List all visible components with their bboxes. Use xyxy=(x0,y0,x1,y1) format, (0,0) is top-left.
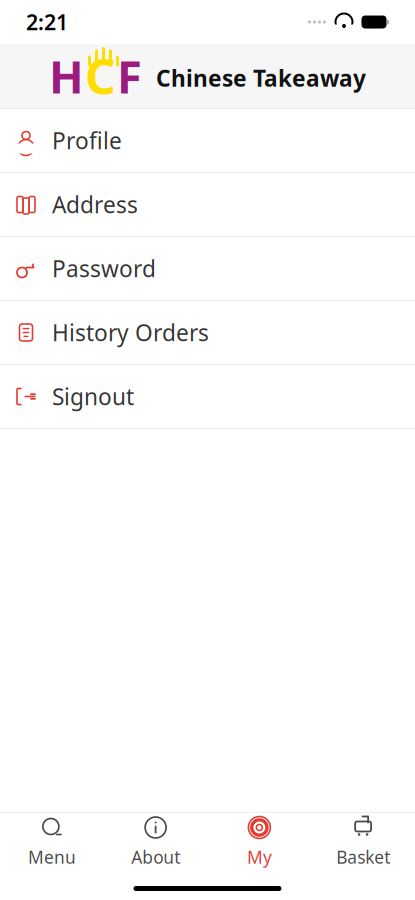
staticText: Password xyxy=(52,253,156,283)
staticText: C xyxy=(85,44,116,108)
staticText: Basket xyxy=(336,845,390,868)
button[interactable]: Signout xyxy=(0,365,415,429)
button[interactable]: Basket xyxy=(311,805,415,876)
button[interactable]: Password xyxy=(0,237,415,301)
button[interactable]: History Orders xyxy=(0,301,415,365)
button[interactable]: About xyxy=(104,805,208,876)
staticText: F xyxy=(117,46,142,106)
staticText: H xyxy=(49,46,84,106)
button[interactable]: Profile xyxy=(0,109,415,173)
staticText: Menu xyxy=(28,845,76,868)
staticText: Profile xyxy=(52,125,122,155)
staticText: History Orders xyxy=(52,317,209,347)
staticText: About xyxy=(131,845,180,868)
staticText: 2:21 xyxy=(26,8,68,36)
button[interactable]: My xyxy=(207,805,311,876)
staticText: My xyxy=(247,845,272,868)
button[interactable]: Address xyxy=(0,173,415,237)
staticText: Signout xyxy=(52,381,134,411)
button[interactable]: Menu xyxy=(0,805,104,876)
staticText: Address xyxy=(52,189,138,219)
staticText: Chinese Takeaway xyxy=(156,63,366,93)
